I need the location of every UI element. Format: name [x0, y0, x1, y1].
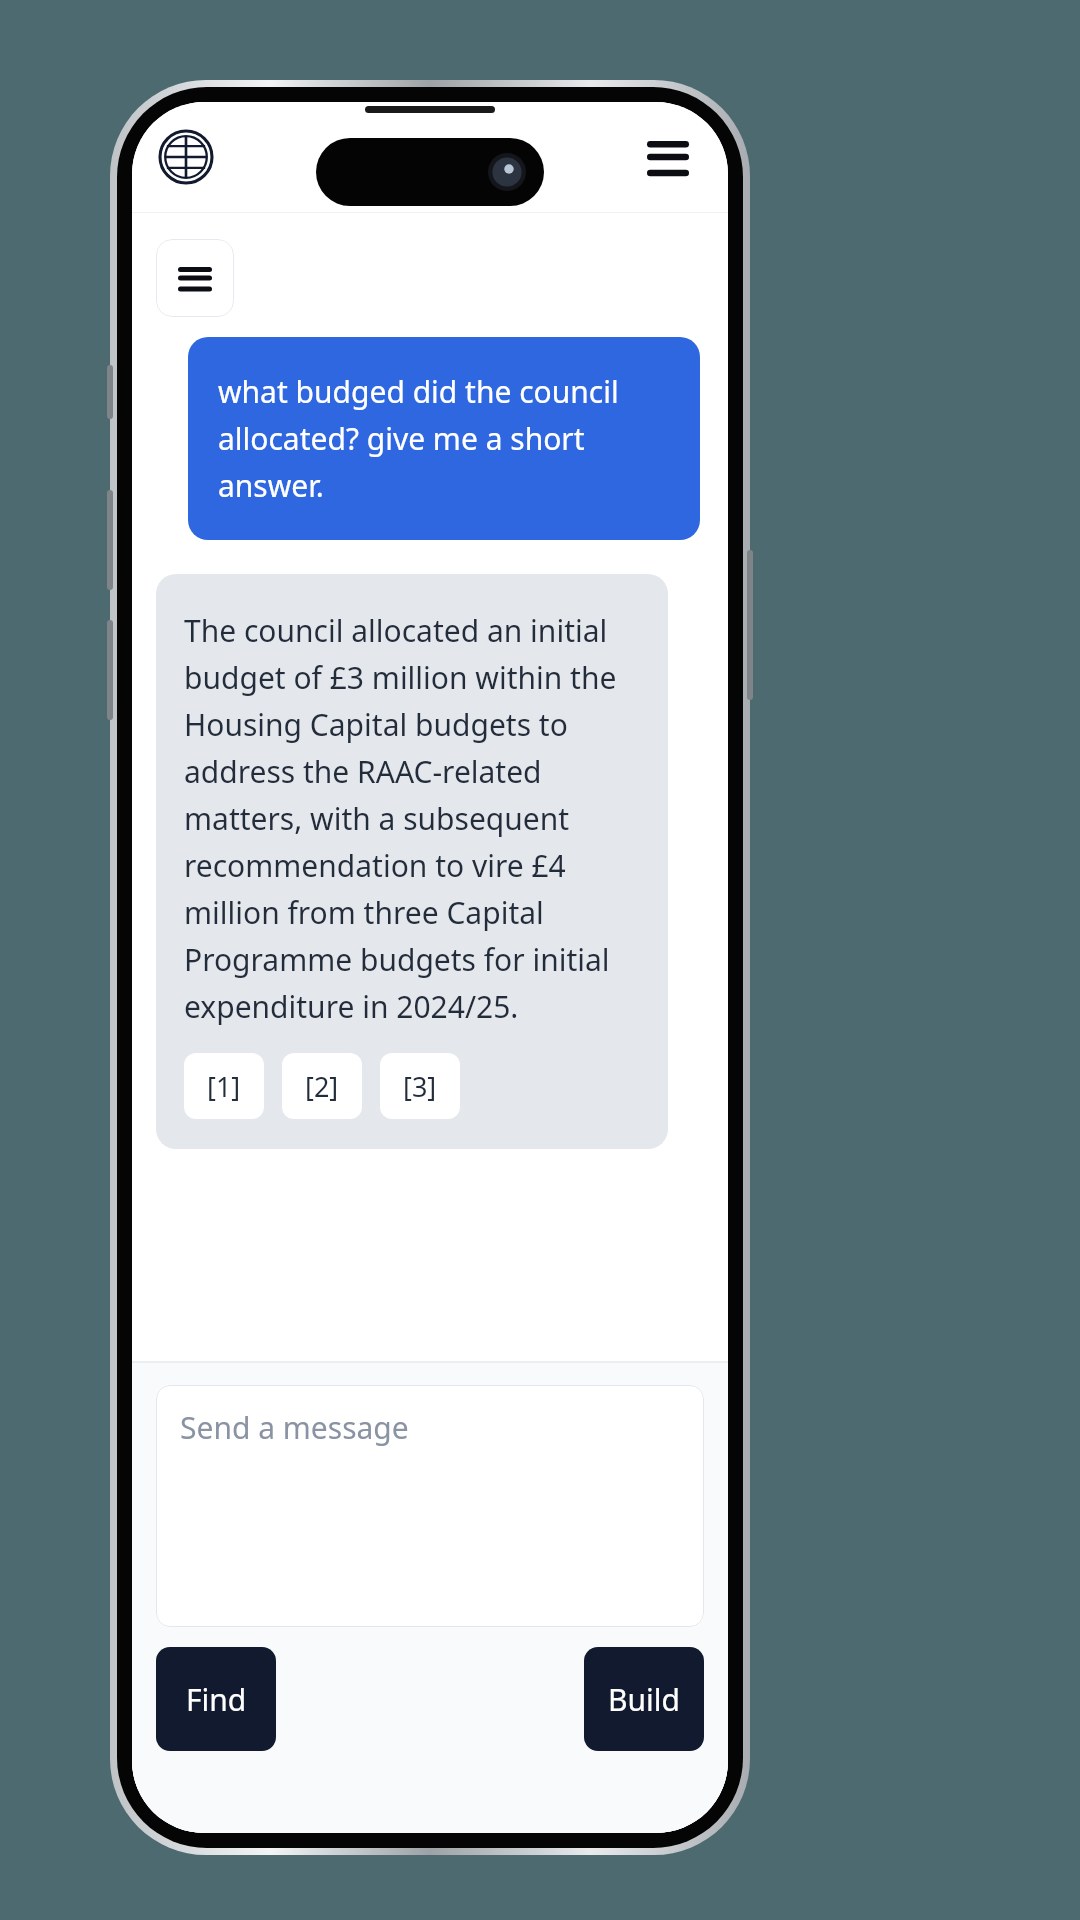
staticText: [2]: [305, 1068, 339, 1105]
staticText: [1]: [207, 1068, 241, 1105]
button[interactable]: what budged did the council allocated? g…: [188, 337, 700, 540]
button[interactable]: Menu: [638, 127, 698, 187]
button[interactable]: [1]: [184, 1053, 264, 1119]
staticText: Send a message: [180, 1407, 409, 1448]
staticText: The council allocated an initial budget …: [184, 610, 644, 1027]
button[interactable]: Send a message: [156, 1385, 704, 1627]
button[interactable]: [3]: [380, 1053, 460, 1119]
button[interactable]: The council allocated an initial budget …: [156, 574, 668, 1149]
staticText: [3]: [403, 1068, 437, 1105]
button[interactable]: Conversations: [156, 239, 234, 317]
staticText: Find: [186, 1679, 247, 1720]
button[interactable]: [2]: [282, 1053, 362, 1119]
staticText: Build: [608, 1679, 680, 1720]
button[interactable]: Find: [156, 1647, 276, 1751]
button[interactable]: Build: [584, 1647, 704, 1751]
button[interactable]: Home: [158, 129, 214, 185]
staticText: what budged did the council allocated? g…: [218, 371, 670, 506]
